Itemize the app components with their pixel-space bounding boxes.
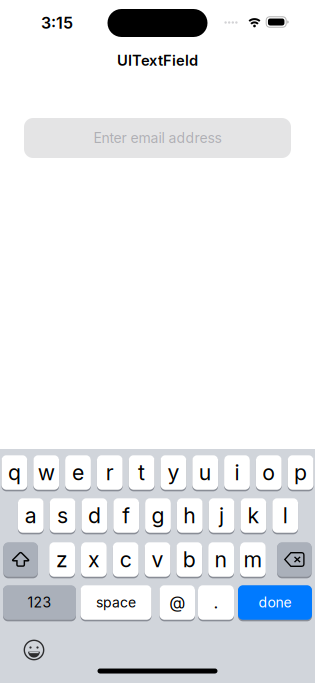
staticText: k (247, 503, 259, 528)
button[interactable]: n (208, 543, 234, 577)
button[interactable]: f (113, 499, 139, 533)
button[interactable]: b (176, 543, 202, 577)
staticText: t (138, 460, 145, 485)
staticText: 123 (27, 594, 51, 611)
staticText: . (213, 592, 218, 613)
button[interactable]: Delete (277, 543, 312, 577)
staticText: f (122, 503, 130, 528)
staticText: z (56, 547, 68, 572)
button[interactable]: e (65, 456, 91, 490)
staticText: q (8, 460, 21, 485)
button[interactable]: t (129, 456, 154, 490)
staticText: b (183, 547, 196, 572)
staticText: h (183, 503, 196, 528)
button[interactable]: u (192, 456, 218, 490)
button[interactable]: x (81, 543, 107, 577)
staticText: w (38, 460, 55, 485)
button[interactable]: k (240, 499, 266, 533)
button[interactable]: d (81, 499, 107, 533)
button[interactable]: c (113, 543, 139, 577)
button[interactable]: space (80, 586, 151, 620)
staticText: m (243, 547, 262, 572)
button[interactable]: y (160, 456, 186, 490)
staticText: l (283, 503, 288, 528)
button[interactable]: r (97, 456, 123, 490)
staticText: n (215, 547, 228, 572)
button[interactable]: Emoji keyboard (23, 639, 44, 660)
staticText: Enter email address (93, 129, 221, 146)
staticText: UITextField (117, 52, 198, 69)
staticText: y (167, 460, 179, 485)
staticText: done (258, 594, 291, 611)
staticText: g (151, 503, 164, 528)
staticText: e (72, 460, 84, 485)
staticText: u (199, 460, 212, 485)
button[interactable]: j (209, 499, 234, 533)
button[interactable]: l (272, 499, 298, 533)
button[interactable]: q (1, 456, 27, 490)
staticText: i (234, 460, 239, 485)
button[interactable]: v (145, 543, 170, 577)
staticText: c (120, 547, 132, 572)
staticText: space (96, 594, 136, 611)
button[interactable]: g (145, 499, 171, 533)
button[interactable]: s (50, 499, 75, 533)
staticText: 3:15 (41, 13, 73, 33)
staticText: @ (169, 592, 185, 613)
button[interactable]: o (256, 456, 282, 490)
button[interactable]: z (49, 543, 75, 577)
staticText: d (88, 503, 101, 528)
button[interactable]: Enter email address (24, 118, 291, 158)
button[interactable]: w (33, 456, 59, 490)
button[interactable]: . (198, 586, 234, 620)
staticText: j (219, 503, 224, 528)
button[interactable]: m (240, 543, 266, 577)
button[interactable]: i (224, 456, 250, 490)
button[interactable]: a (18, 499, 44, 533)
button[interactable]: h (177, 499, 203, 533)
staticText: x (88, 547, 100, 572)
staticText: o (262, 460, 275, 485)
button[interactable]: done (238, 586, 312, 620)
staticText: r (106, 460, 114, 485)
staticText: p (294, 460, 307, 485)
staticText: v (151, 547, 163, 572)
button[interactable]: Shift (3, 543, 38, 577)
button[interactable]: @ (159, 586, 195, 620)
button[interactable]: p (288, 456, 313, 490)
staticText: s (57, 503, 68, 528)
button[interactable]: 123 (3, 586, 76, 620)
staticText: a (25, 503, 37, 528)
